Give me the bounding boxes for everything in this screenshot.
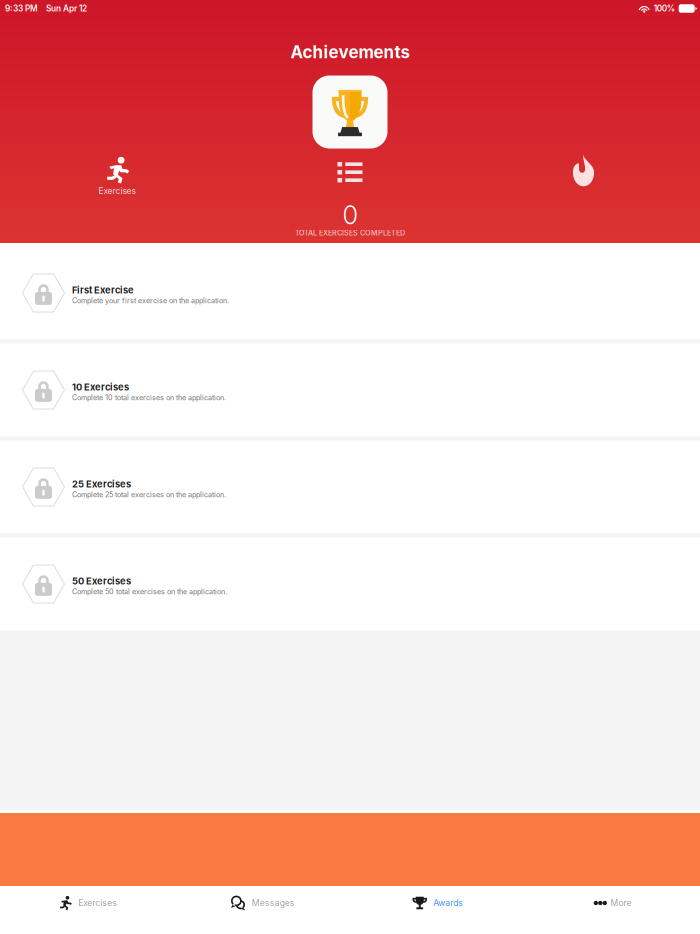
staticText: Achievements	[290, 42, 409, 62]
button[interactable]: Messages	[175, 886, 350, 934]
staticText: 9:33 PM	[5, 3, 38, 13]
staticText: 10 Exercises	[72, 381, 129, 393]
button[interactable]: More	[525, 886, 700, 934]
staticText: TOTAL EXERCISES COMPLETED	[295, 229, 405, 237]
staticText: Messages	[252, 898, 295, 908]
staticText: Awards	[433, 898, 463, 908]
button[interactable]: Exercises	[0, 886, 175, 934]
staticText: 50 Exercises	[72, 575, 131, 587]
staticText: First Exercise	[72, 284, 134, 296]
button[interactable]: 10 Exercises	[0, 343, 700, 436]
button[interactable]: 25 Exercises	[0, 440, 700, 533]
button[interactable]: First Exercise	[0, 246, 700, 339]
staticText: 25 Exercises	[72, 478, 131, 490]
staticText: Complete 25 total exercises on the appli…	[72, 490, 226, 499]
button[interactable]: 50 Exercises	[0, 537, 700, 630]
button[interactable]: Awards	[350, 886, 525, 934]
staticText: Complete 10 total exercises on the appli…	[72, 393, 226, 402]
staticText: Complete your first exercise on the appl…	[72, 296, 229, 305]
staticText: Exercises	[78, 898, 117, 908]
staticText: Exercises	[98, 186, 135, 196]
staticText: Complete 50 total exercises on the appli…	[72, 587, 227, 596]
staticText: 0	[342, 200, 357, 230]
staticText: Sun Apr 12	[46, 3, 87, 13]
staticText: 100%	[654, 3, 675, 13]
staticText: More	[611, 898, 632, 908]
